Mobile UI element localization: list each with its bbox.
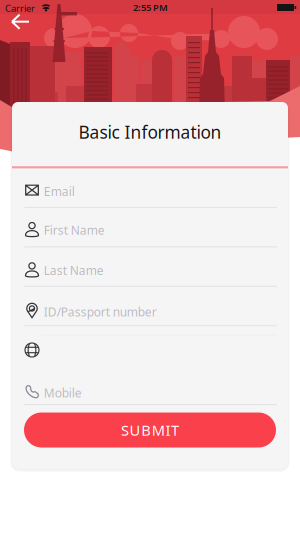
button[interactable]: Back: [2, 8, 40, 36]
staticText: SUBMIT: [121, 420, 179, 440]
button[interactable]: Country: [12, 326, 288, 366]
staticText: 2:55 PM: [133, 1, 168, 14]
staticText: First Name: [44, 222, 105, 238]
button[interactable]: Email: [12, 169, 288, 208]
button[interactable]: Mobile: [12, 366, 288, 405]
button[interactable]: ID/Passport number: [12, 287, 288, 326]
button[interactable]: First Name: [12, 208, 288, 248]
staticText: Mobile: [44, 385, 82, 401]
button[interactable]: SUBMIT: [24, 412, 276, 447]
staticText: Basic Information: [78, 120, 221, 143]
staticText: Carrier: [5, 2, 35, 14]
staticText: Email: [44, 183, 75, 199]
staticText: Last Name: [44, 262, 104, 278]
staticText: ID/Passport number: [44, 304, 157, 320]
button[interactable]: Last Name: [12, 247, 288, 287]
